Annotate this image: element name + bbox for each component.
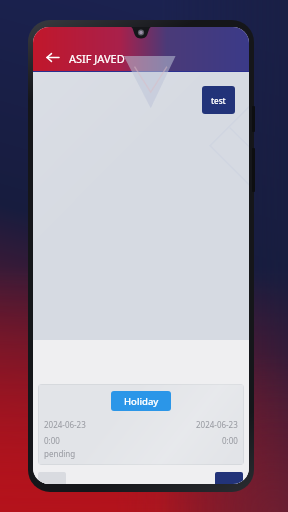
staticText: 0:00 (222, 435, 238, 446)
staticText: test (211, 95, 226, 106)
button[interactable]: test (202, 86, 235, 114)
staticText: Holiday (124, 395, 159, 408)
button[interactable]: Back (41, 46, 63, 68)
staticText: 2024-06-23 (44, 419, 86, 430)
staticText: ASIF JAVED (69, 51, 125, 66)
staticText: 0:00 (44, 435, 60, 446)
staticText: pending (44, 448, 76, 459)
button[interactable]: Next (215, 472, 243, 484)
button[interactable]: Holiday (38, 384, 244, 465)
button[interactable]: Holiday (111, 391, 171, 411)
staticText: 2024-06-23 (196, 419, 238, 430)
button[interactable] (38, 472, 66, 484)
